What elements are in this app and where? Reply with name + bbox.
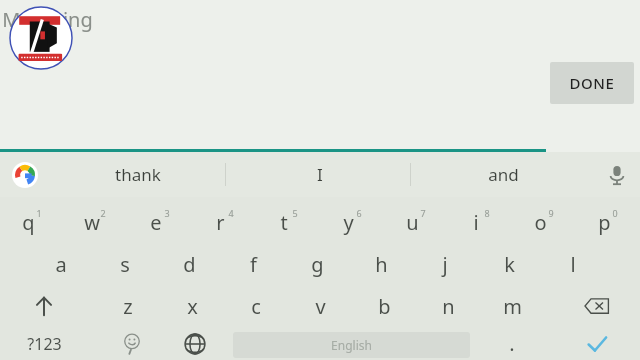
button[interactable]: h (349, 243, 413, 285)
button[interactable]: z (96, 285, 160, 327)
button[interactable]: and (418, 152, 588, 197)
button[interactable]: My listing (2, 6, 93, 33)
staticText: r (216, 209, 225, 236)
staticText: ?123 (27, 333, 62, 355)
button[interactable]: r (188, 201, 252, 243)
staticText: h (375, 251, 388, 278)
button[interactable]: i (444, 201, 508, 243)
button[interactable]: x (160, 285, 224, 327)
staticText: thank (115, 163, 161, 186)
button[interactable]: p (572, 201, 636, 243)
button[interactable]: b (352, 285, 416, 327)
staticText: w (84, 209, 100, 236)
button[interactable]: y (316, 201, 380, 243)
staticText: m (503, 293, 522, 320)
staticText: 9 (548, 207, 554, 219)
staticText: g (311, 251, 324, 278)
staticText: 3 (164, 207, 170, 219)
button[interactable]: DONE (550, 62, 634, 104)
staticText: English (331, 337, 372, 353)
staticText: d (183, 251, 196, 278)
button[interactable]: Emoji (100, 327, 164, 360)
staticText: and (488, 163, 519, 186)
button[interactable]: thank (50, 152, 225, 197)
button[interactable]: f (221, 243, 285, 285)
staticText: u (406, 209, 419, 236)
button[interactable]: Google (8, 158, 41, 191)
staticText: s (120, 251, 130, 278)
staticText: 6 (356, 207, 362, 219)
staticText: j (442, 251, 448, 278)
button[interactable]: Shift (12, 285, 76, 327)
staticText: y (343, 209, 354, 236)
staticText: i (473, 209, 479, 236)
button[interactable]: v (288, 285, 352, 327)
button[interactable]: Enter (565, 327, 629, 360)
staticText: . (509, 330, 515, 357)
staticText: DONE (569, 73, 615, 93)
button[interactable]: t (252, 201, 316, 243)
staticText: q (22, 209, 35, 236)
button[interactable]: g (285, 243, 349, 285)
staticText: n (442, 293, 455, 320)
staticText: 0 (612, 207, 618, 219)
staticText: f (250, 251, 257, 278)
staticText: x (187, 293, 198, 320)
staticText: e (150, 209, 162, 236)
staticText: c (251, 293, 261, 320)
button[interactable]: o (508, 201, 572, 243)
button[interactable]: j (413, 243, 477, 285)
staticText: v (315, 293, 326, 320)
staticText: k (504, 251, 515, 278)
button[interactable]: . (480, 327, 544, 360)
button[interactable]: k (477, 243, 541, 285)
staticText: p (598, 209, 611, 236)
button[interactable]: ?123 (6, 327, 82, 360)
staticText: o (534, 209, 547, 236)
staticText: My listing (2, 6, 93, 33)
button[interactable]: d (157, 243, 221, 285)
button[interactable]: Voice input (600, 158, 634, 192)
button[interactable]: n (416, 285, 480, 327)
button[interactable]: c (224, 285, 288, 327)
staticText: 5 (292, 207, 298, 219)
staticText: 8 (484, 207, 490, 219)
staticText: t (280, 209, 288, 236)
staticText: a (55, 251, 67, 278)
button[interactable]: s (93, 243, 157, 285)
button[interactable]: m (480, 285, 544, 327)
staticText: 4 (228, 207, 234, 219)
button[interactable]: u (380, 201, 444, 243)
staticText: I (317, 163, 323, 186)
staticText: 7 (420, 207, 426, 219)
staticText: 2 (100, 207, 106, 219)
button[interactable]: I (250, 152, 390, 197)
button[interactable]: l (541, 243, 605, 285)
staticText: 1 (36, 207, 42, 219)
button[interactable]: Change language (163, 327, 227, 360)
button[interactable]: a (29, 243, 93, 285)
button[interactable]: w (60, 201, 124, 243)
staticText: z (123, 293, 133, 320)
staticText: b (378, 293, 391, 320)
button[interactable]: q (0, 201, 60, 243)
staticText: l (570, 251, 576, 278)
button[interactable]: e (124, 201, 188, 243)
button[interactable]: English (233, 332, 470, 358)
button[interactable]: Backspace (565, 285, 629, 327)
